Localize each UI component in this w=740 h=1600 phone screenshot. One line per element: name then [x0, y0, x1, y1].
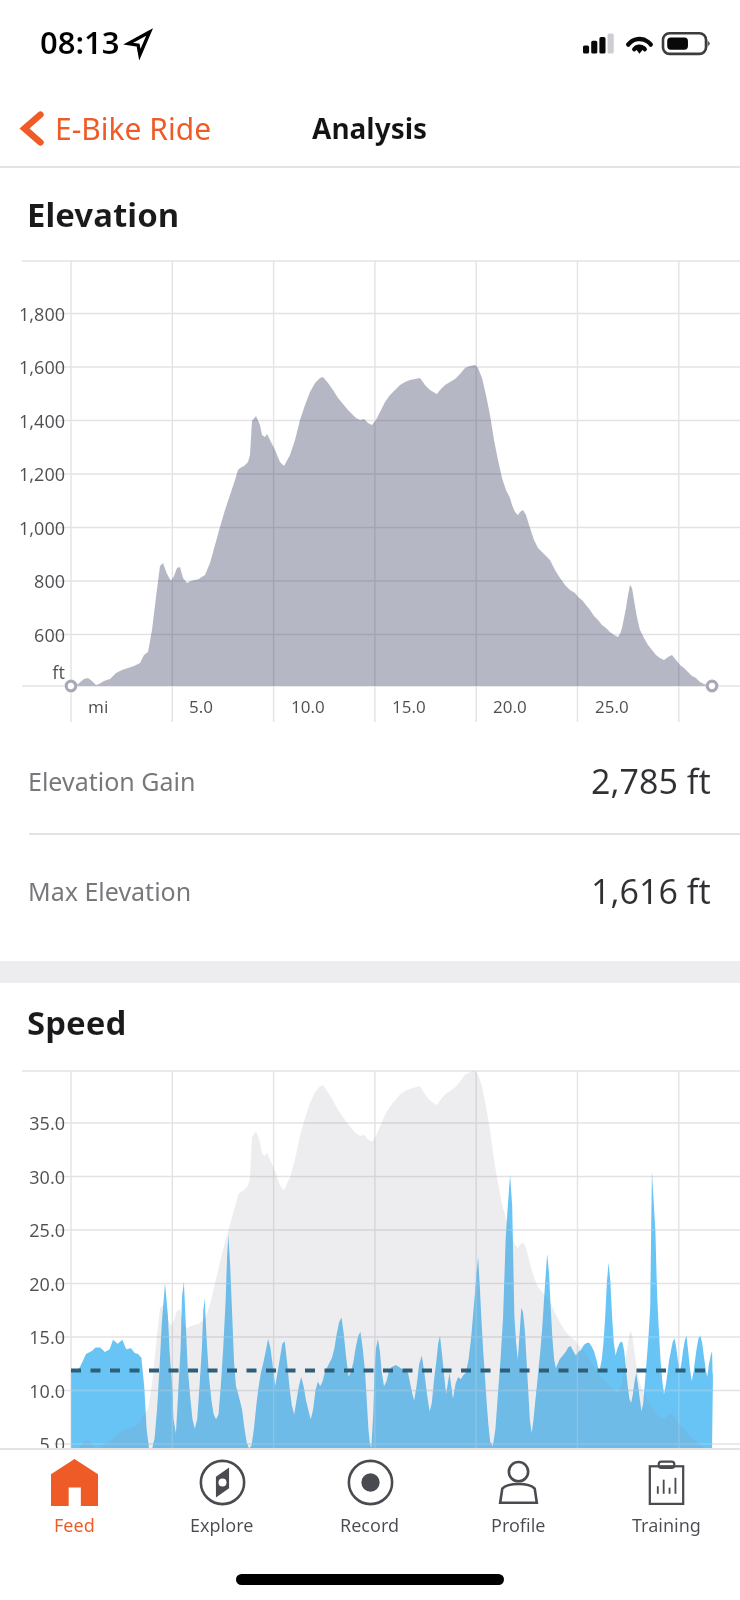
staticText: Feed: [54, 1513, 95, 1538]
staticText: 1,616 ft: [591, 868, 711, 914]
staticText: 20.0: [493, 695, 527, 718]
staticText: Max Elevation: [28, 874, 192, 908]
staticText: 10.0: [291, 695, 325, 718]
staticText: ft: [52, 660, 65, 685]
button[interactable]: Training: [592, 1450, 740, 1548]
staticText: Record: [340, 1513, 400, 1538]
staticText: 5.0: [189, 695, 214, 718]
button[interactable]: Max Elevation: [0, 834, 740, 947]
staticText: 15.0: [29, 1325, 65, 1350]
staticText: 1,600: [18, 355, 65, 380]
staticText: Elevation: [27, 192, 180, 237]
staticText: 25.0: [595, 695, 629, 718]
staticText: 35.0: [29, 1111, 65, 1136]
button[interactable]: Record: [296, 1450, 444, 1548]
staticText: Explore: [190, 1513, 254, 1538]
staticText: 2,785 ft: [591, 758, 711, 804]
staticText: 20.0: [29, 1272, 65, 1297]
staticText: mi: [88, 695, 109, 718]
staticText: E-Bike Ride: [55, 108, 212, 149]
staticText: Analysis: [312, 109, 428, 147]
staticText: Training: [632, 1513, 701, 1538]
staticText: 15.0: [392, 695, 426, 718]
button[interactable]: Explore: [148, 1450, 296, 1548]
staticText: 5.0: [39, 1432, 65, 1457]
staticText: Speed: [27, 1000, 127, 1045]
staticText: 1,800: [18, 302, 65, 327]
staticText: 800: [34, 569, 65, 594]
staticText: Elevation Gain: [28, 764, 196, 798]
staticText: 08:13: [40, 21, 120, 63]
staticText: 600: [34, 623, 65, 648]
staticText: 30.0: [29, 1165, 65, 1190]
staticText: 10.0: [29, 1379, 65, 1404]
button[interactable]: Back to E-Bike Ride: [0, 108, 228, 149]
staticText: Profile: [491, 1513, 546, 1538]
staticText: 1,000: [18, 516, 65, 541]
staticText: 1,400: [18, 409, 65, 434]
button[interactable]: Profile: [444, 1450, 592, 1548]
staticText: 1,200: [18, 462, 65, 487]
button[interactable]: Feed: [0, 1450, 148, 1548]
staticText: 25.0: [29, 1218, 65, 1243]
button[interactable]: Elevation Gain: [0, 727, 740, 834]
